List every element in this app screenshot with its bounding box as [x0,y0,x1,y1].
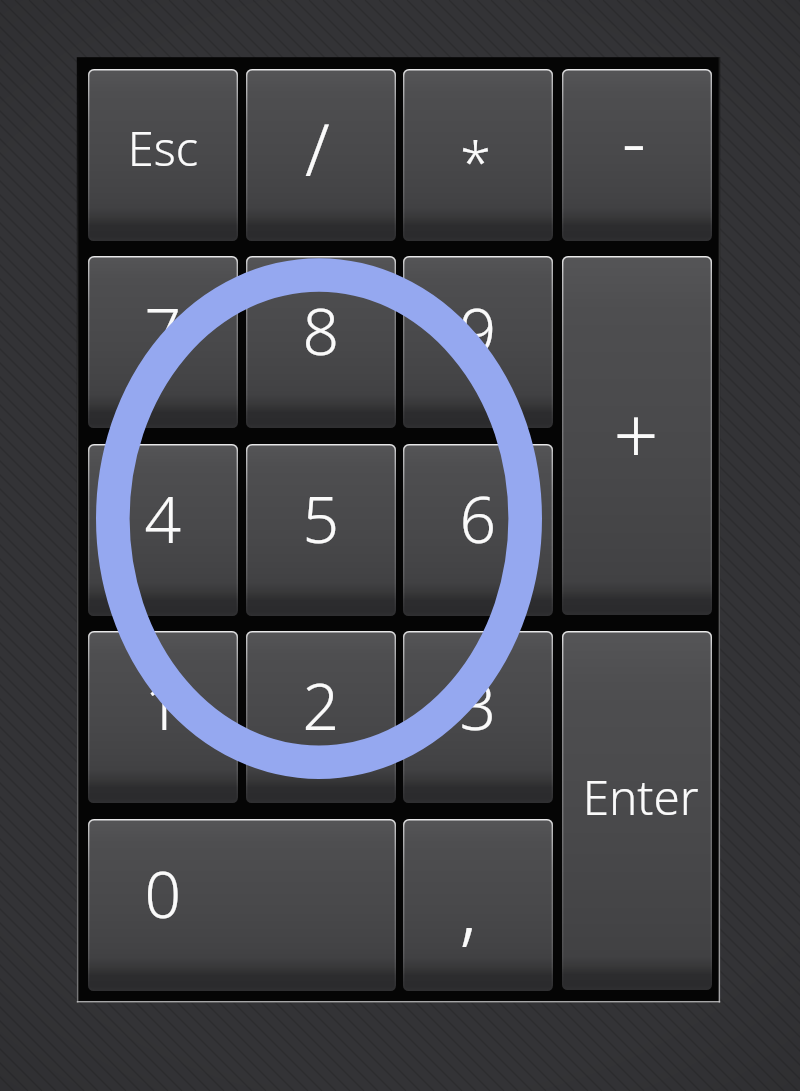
button[interactable]: 9 [403,256,553,428]
button[interactable]: Plus [562,256,712,615]
button[interactable]: 7 [88,256,238,428]
button[interactable]: Comma [403,819,553,991]
button[interactable]: Divide [246,69,396,241]
button[interactable]: Esc [88,69,238,241]
button[interactable]: Multiply [403,69,553,241]
button[interactable]: 5 [246,444,396,616]
button[interactable]: Minus [562,69,712,241]
button[interactable]: Enter [562,631,712,990]
button[interactable]: 2 [246,631,396,803]
button[interactable]: 1 [88,631,238,803]
button[interactable]: 3 [403,631,553,803]
button[interactable]: 4 [88,444,238,616]
button[interactable]: 0 [88,819,396,991]
button[interactable]: 6 [403,444,553,616]
button[interactable]: 8 [246,256,396,428]
